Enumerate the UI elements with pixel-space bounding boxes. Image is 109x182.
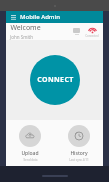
staticText: John Smith bbox=[10, 34, 33, 40]
staticText: History bbox=[70, 150, 88, 157]
button[interactable]: Connection status bbox=[85, 25, 99, 38]
button[interactable]: CONNECT bbox=[30, 55, 80, 105]
staticText: CONNECT bbox=[37, 75, 74, 85]
staticText: Connected bbox=[85, 34, 99, 38]
button[interactable]: History bbox=[54, 120, 103, 166]
staticText: Last sync 4:11 bbox=[69, 158, 89, 162]
staticText: Welcome bbox=[10, 23, 41, 33]
button[interactable]: Upload bbox=[6, 120, 54, 166]
staticText: Mobile Admin bbox=[20, 13, 60, 21]
staticText: Send data bbox=[23, 158, 38, 162]
staticText: Upload bbox=[21, 150, 39, 157]
button[interactable]: Open navigation menu bbox=[9, 13, 17, 21]
button[interactable]: Device card bbox=[72, 28, 81, 35]
